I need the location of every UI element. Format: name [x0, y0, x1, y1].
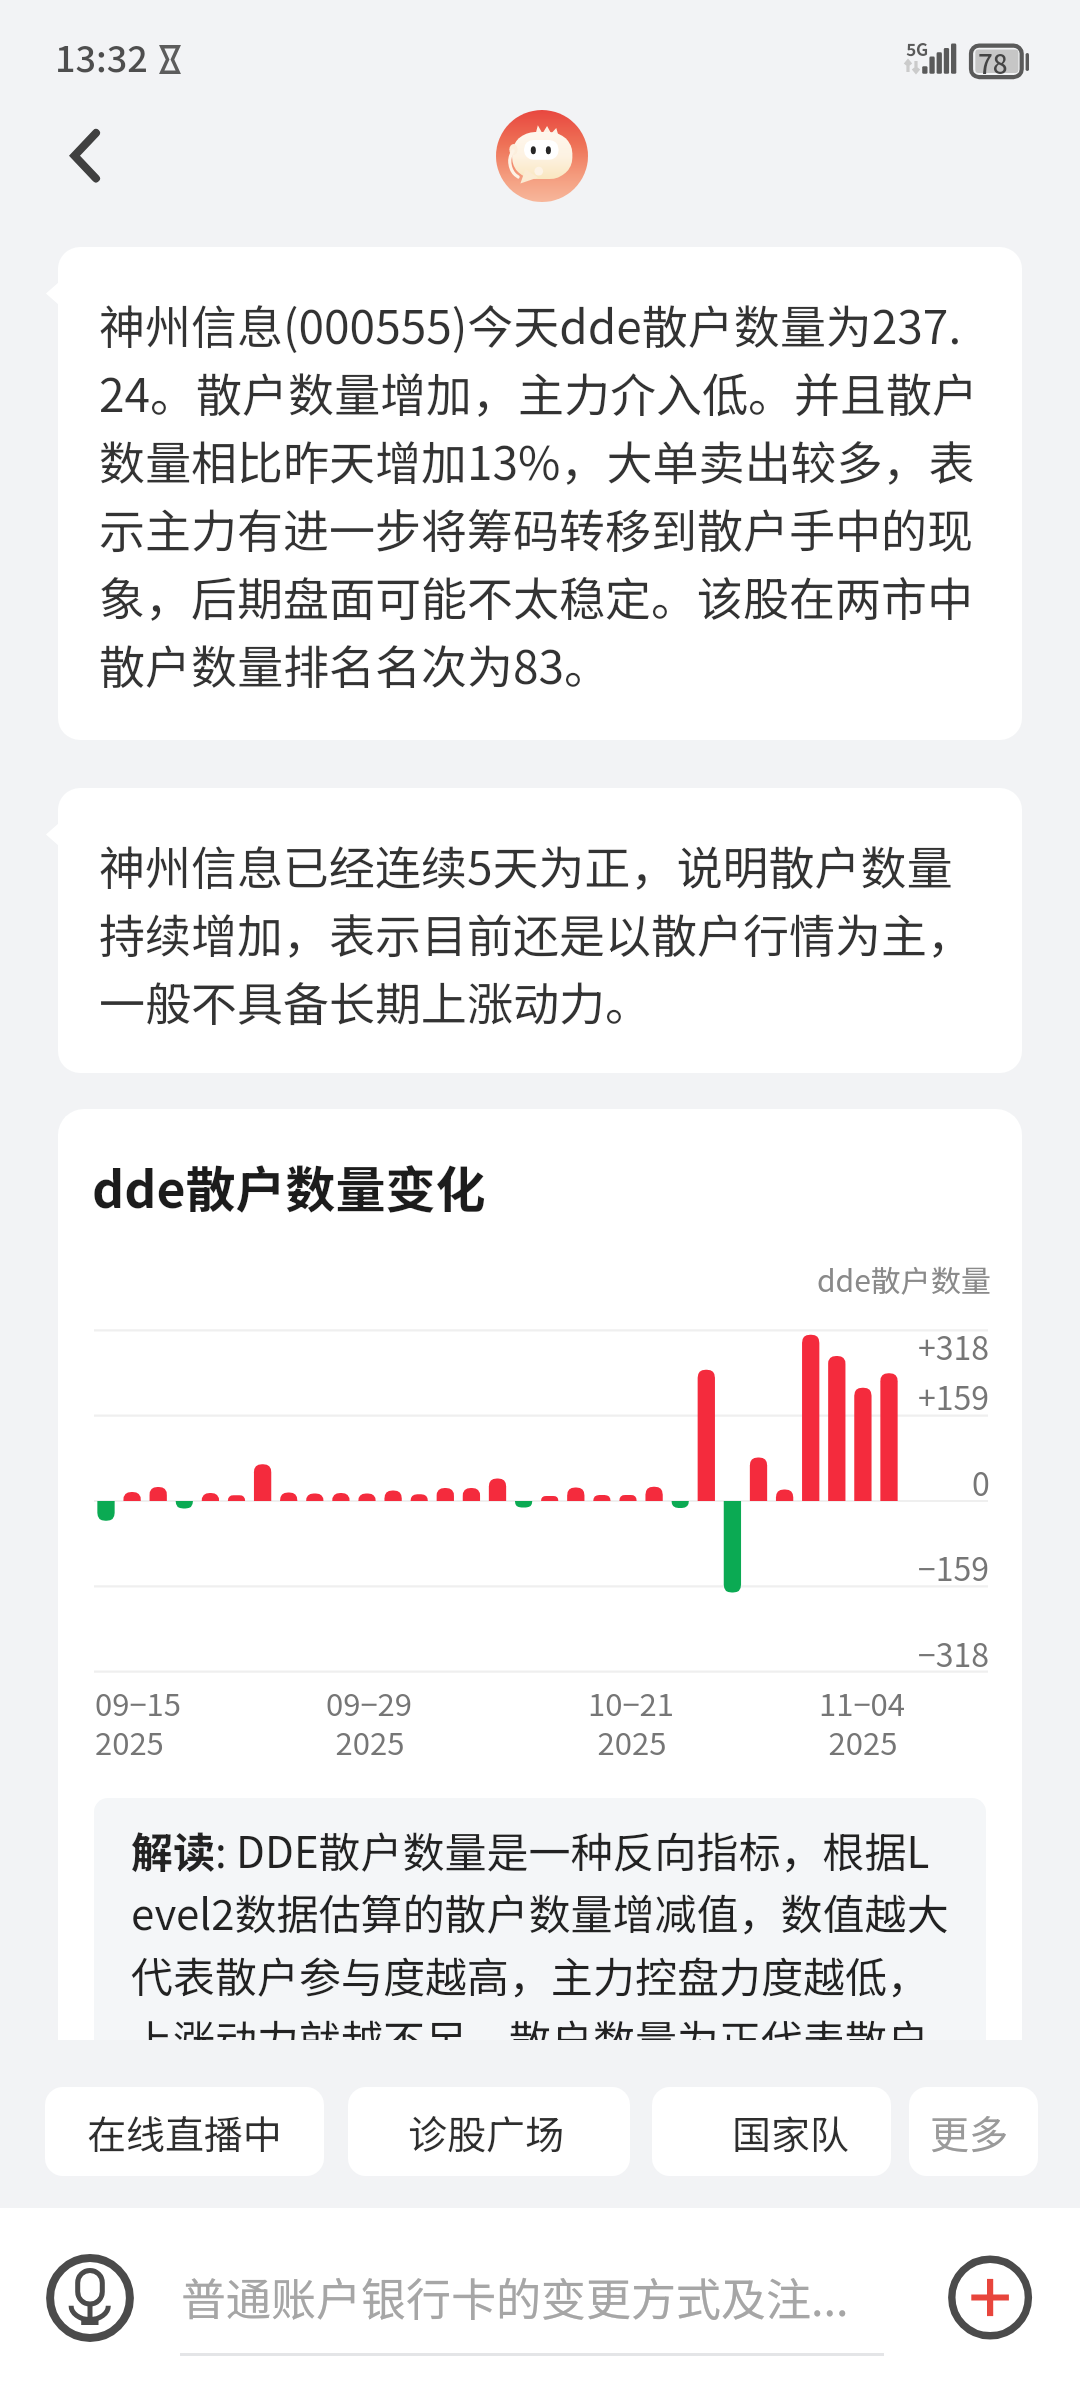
staticText: 更多	[930, 2104, 1009, 2160]
staticText: 神州信息(000555)今天dde散户数量为237.​24。散户数量增加，主力介…	[99, 291, 981, 698]
staticText: 78	[978, 44, 1008, 82]
staticText: 09−15	[95, 1680, 182, 1725]
button[interactable]: 诊股广场	[348, 2087, 630, 2176]
staticText: 2025	[326, 1719, 414, 1764]
staticText: 09−29	[326, 1680, 413, 1725]
button[interactable]: 神州信息已经连续5天为正，说明散户数量持续增加，表示目前还是以散户行情为主，一般…	[58, 788, 1022, 1073]
button[interactable]: Back	[40, 110, 132, 202]
staticText: dde散户数量	[817, 1257, 991, 1300]
button[interactable]: 更多	[909, 2087, 1038, 2176]
staticText: 11−04	[819, 1680, 906, 1725]
button[interactable]: 普通账户银行卡的变更方式及注...	[180, 2256, 886, 2358]
staticText: 10−21	[588, 1680, 675, 1725]
staticText: 神州信息已经连续5天为正，说明散户数量持续增加，表示目前还是以散户行情为主，一般…	[99, 832, 981, 1035]
staticText: 2025	[819, 1719, 907, 1764]
staticText: +159	[918, 1373, 990, 1419]
button[interactable]: dde散户数量变化	[58, 1109, 1022, 2040]
button[interactable]: 国家队	[652, 2087, 891, 2176]
button[interactable]: 在线直播中	[45, 2087, 324, 2176]
staticText: 0	[972, 1459, 990, 1505]
staticText: 在线直播中	[87, 2104, 283, 2160]
button[interactable]: Assistant avatar	[496, 110, 588, 202]
staticText: −318	[918, 1630, 990, 1676]
staticText: 解读: DDE散户数量是一种反向指标，根据L​evel2数据估算的散户数量增减值…	[131, 1819, 956, 2040]
button[interactable]: Voice input	[44, 2252, 136, 2344]
staticText: −159	[918, 1544, 990, 1590]
button[interactable]: 神州信息(000555)今天dde散户数量为237.​24。散户数量增加，主力介…	[58, 247, 1022, 740]
staticText: dde散户数量变化	[92, 1150, 486, 1222]
staticText: 诊股广场	[408, 2104, 565, 2160]
button[interactable]: Add	[946, 2252, 1034, 2340]
staticText: 13:32	[55, 30, 148, 82]
staticText: 2025	[95, 1719, 183, 1764]
staticText: 国家队	[732, 2104, 850, 2160]
staticText: 2025	[588, 1719, 676, 1764]
staticText: 5G	[906, 36, 929, 61]
staticText: +318	[918, 1323, 990, 1369]
staticText: 普通账户银行卡的变更方式及注...	[181, 2264, 849, 2329]
